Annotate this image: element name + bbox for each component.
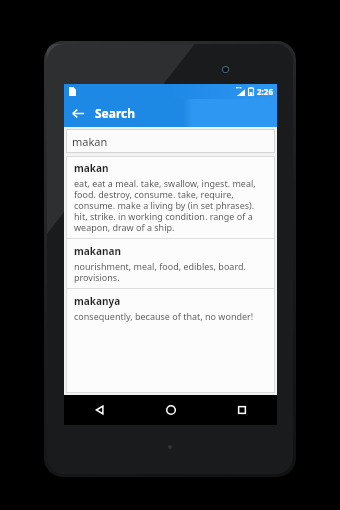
button[interactable]: Back xyxy=(64,99,92,127)
button[interactable]: makan xyxy=(66,156,275,238)
staticText: nourishment, meal, food, edibles, board.… xyxy=(74,260,268,283)
button[interactable]: makan xyxy=(66,129,275,153)
staticText: makan xyxy=(72,134,108,149)
staticText: Search xyxy=(95,105,136,121)
staticText: eat, eat a meal. take, swallow, ingest. … xyxy=(74,177,268,233)
staticText: makanya xyxy=(74,294,121,308)
button[interactable]: makanan xyxy=(66,239,275,288)
button[interactable]: makanya xyxy=(66,289,275,327)
button[interactable]: Recent apps xyxy=(206,395,277,425)
staticText: consequently, because of that, no wonder… xyxy=(74,310,254,322)
staticText: makan xyxy=(74,161,109,175)
button[interactable]: Home xyxy=(135,395,206,425)
staticText: 2:26 xyxy=(257,86,273,97)
button[interactable]: Back xyxy=(64,395,135,425)
staticText: makanan xyxy=(74,244,121,258)
